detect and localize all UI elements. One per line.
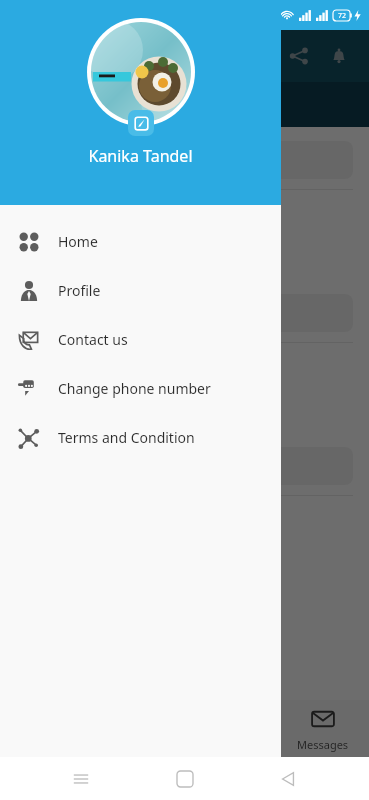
- button[interactable]: Notifications: [319, 36, 359, 76]
- button[interactable]: Change phone number: [0, 364, 281, 413]
- button[interactable]: Profile picture: [91, 22, 191, 122]
- button[interactable]: Recents: [59, 757, 103, 800]
- button[interactable]: Share: [279, 36, 319, 76]
- button[interactable]: Back: [266, 757, 310, 800]
- staticText: Kanika Tandel: [0, 145, 281, 167]
- button[interactable]: Profile: [0, 266, 281, 315]
- button[interactable]: Contact us: [0, 315, 281, 364]
- button[interactable]: [16, 294, 353, 332]
- button[interactable]: Messages: [277, 700, 369, 757]
- button[interactable]: Edit profile: [128, 110, 154, 136]
- button[interactable]: [16, 141, 353, 179]
- staticText: Messages: [297, 737, 349, 752]
- button[interactable]: Home: [0, 217, 281, 266]
- button[interactable]: [16, 447, 353, 485]
- staticText: 72: [338, 11, 347, 21]
- staticText: Profile: [58, 281, 101, 300]
- button[interactable]: Terms and Condition: [0, 413, 281, 462]
- staticText: Contact us: [58, 330, 128, 349]
- button[interactable]: Home: [163, 757, 207, 800]
- staticText: Change phone number: [58, 379, 211, 398]
- staticText: Home: [58, 232, 98, 251]
- staticText: Terms and Condition: [58, 428, 195, 447]
